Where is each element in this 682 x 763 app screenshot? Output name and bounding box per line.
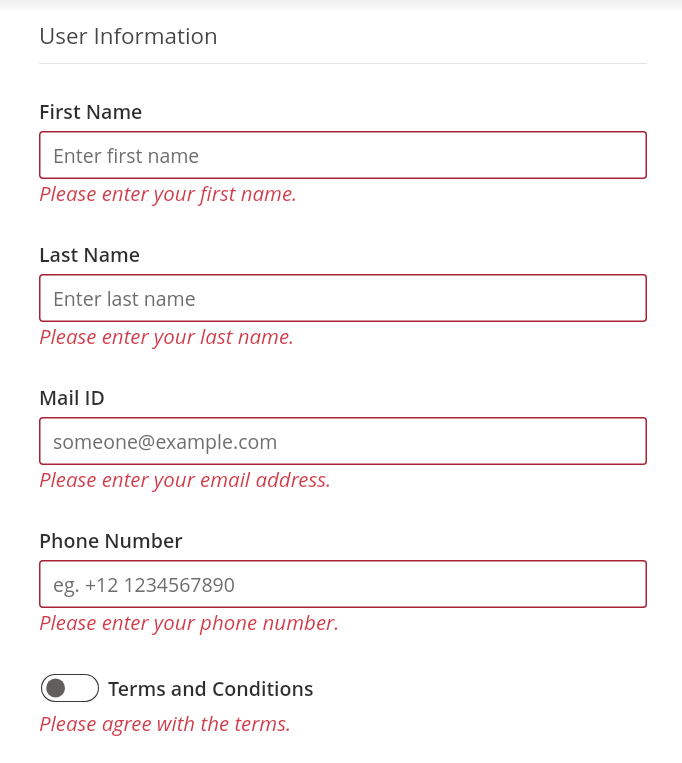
staticText: Please agree with the terms. (39, 709, 292, 737)
staticText: Please enter your last name. (39, 322, 295, 350)
button[interactable]: eg. +12 1234567890 (39, 560, 647, 608)
staticText: Mail ID (39, 384, 105, 411)
button[interactable]: Enter first name (39, 131, 647, 179)
staticText: someone@example.com (53, 428, 278, 455)
staticText: Please enter your first name. (39, 179, 298, 207)
staticText: Enter first name (53, 142, 200, 169)
button[interactable]: Accept terms and conditions (41, 674, 99, 702)
staticText: Terms and Conditions (108, 675, 314, 702)
staticText: Phone Number (39, 527, 183, 554)
staticText: Enter last name (53, 285, 196, 312)
staticText: Please enter your email address. (39, 465, 332, 493)
button[interactable]: someone@example.com (39, 417, 647, 465)
staticText: eg. +12 1234567890 (53, 571, 235, 598)
staticText: First Name (39, 98, 143, 125)
staticText: Last Name (39, 241, 141, 268)
staticText: Please enter your phone number. (39, 608, 340, 636)
button[interactable]: Enter last name (39, 274, 647, 322)
staticText: User Information (39, 20, 218, 51)
